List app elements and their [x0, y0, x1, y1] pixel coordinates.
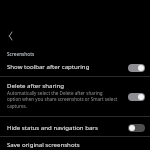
button[interactable]: Save original screenshots [0, 137, 150, 150]
staticText: Automatically select the Delete after sh… [7, 90, 118, 110]
staticText: Save original screenshots [7, 140, 80, 148]
button[interactable]: Hide status and navigation bars [128, 124, 145, 132]
staticText: Delete after sharing [7, 81, 65, 89]
staticText: Show toolbar after capturing [7, 62, 90, 70]
staticText: Screenshots [7, 51, 35, 57]
staticText: Hide status and navigation bars [7, 123, 98, 131]
button[interactable]: Delete after sharing [0, 77, 150, 116]
button[interactable]: Delete after sharing [128, 93, 145, 101]
button[interactable]: Hide status and navigation bars [0, 117, 150, 136]
button[interactable]: Show toolbar after capturing [0, 60, 150, 76]
button[interactable]: Back [3, 29, 17, 43]
button[interactable]: Show toolbar after capturing [128, 64, 145, 72]
